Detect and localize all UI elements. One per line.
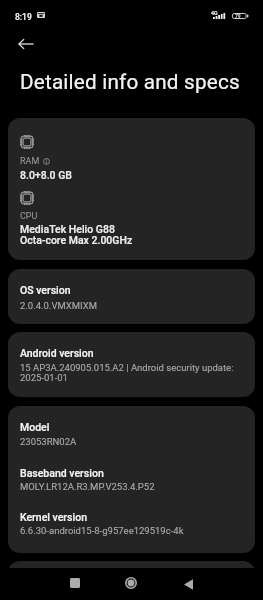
button[interactable]: Model (8, 406, 255, 553)
button[interactable]: Back (171, 568, 205, 600)
staticText: RAM (20, 156, 40, 167)
staticText: CPU (20, 211, 38, 222)
staticText: MOLY.LR12A.R3.MP.V253.4.P52 (20, 481, 155, 492)
staticText: OS version (20, 284, 71, 296)
button[interactable]: Home (114, 567, 148, 599)
staticText: 6.6.30-android15-8-g957ee129519c-4k (20, 525, 184, 536)
staticText: Baseband version (20, 467, 104, 479)
button[interactable]: Recent apps (58, 567, 92, 599)
staticText: 15 AP3A.240905.015.A2 | Android security… (20, 362, 245, 383)
staticText: 8.0+8.0 GB (20, 169, 72, 181)
staticText: 8:19 (15, 12, 32, 22)
staticText: Android version (20, 347, 94, 359)
staticText: MediaTek Helio G88 Octa-core Max 2.00GHz (20, 223, 133, 246)
staticText: 4G (211, 10, 218, 16)
button[interactable]: Android version (8, 332, 255, 397)
staticText: 79 (235, 13, 241, 19)
staticText: Detailed info and specs (20, 70, 240, 94)
button[interactable]: Navigate up (13, 31, 39, 57)
staticText: 23053RN02A (20, 436, 77, 447)
button[interactable] (8, 561, 255, 600)
staticText: 2.0.4.0.VMXMIXM (20, 300, 97, 311)
staticText: Kernel version (20, 511, 87, 523)
button[interactable]: RAM (8, 118, 255, 260)
staticText: Model (20, 421, 50, 433)
button[interactable]: OS version (8, 269, 255, 324)
